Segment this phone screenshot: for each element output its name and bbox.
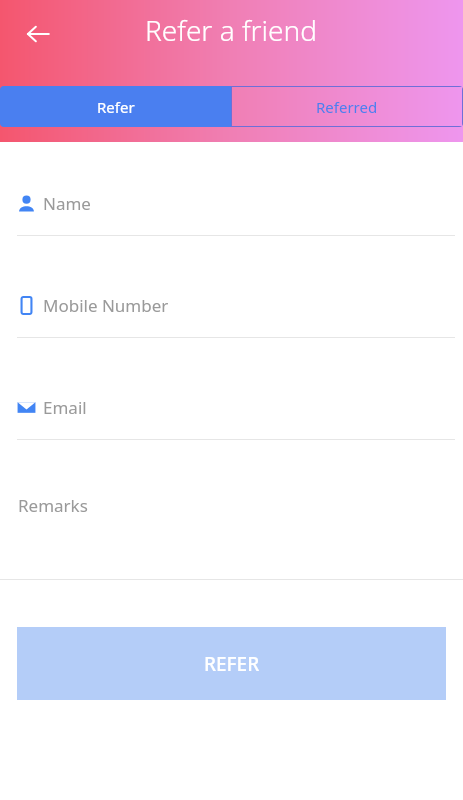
staticText: Referred — [316, 97, 378, 117]
button[interactable]: Referred — [231, 86, 463, 127]
staticText: Refer a friend — [145, 11, 318, 49]
button[interactable]: Name — [0, 192, 463, 236]
staticText: Name — [43, 192, 91, 215]
staticText: Mobile Number — [43, 294, 169, 317]
staticText: Email — [43, 396, 87, 419]
button[interactable]: REFER — [17, 627, 446, 700]
staticText: Remarks — [18, 494, 88, 517]
staticText: REFER — [204, 651, 260, 677]
button[interactable]: Email — [0, 396, 463, 440]
button[interactable]: Mobile Number — [0, 294, 463, 338]
button[interactable]: Refer — [0, 86, 231, 127]
staticText: Refer — [97, 97, 135, 117]
button[interactable]: Back — [14, 10, 62, 58]
button[interactable]: Remarks — [0, 494, 463, 580]
